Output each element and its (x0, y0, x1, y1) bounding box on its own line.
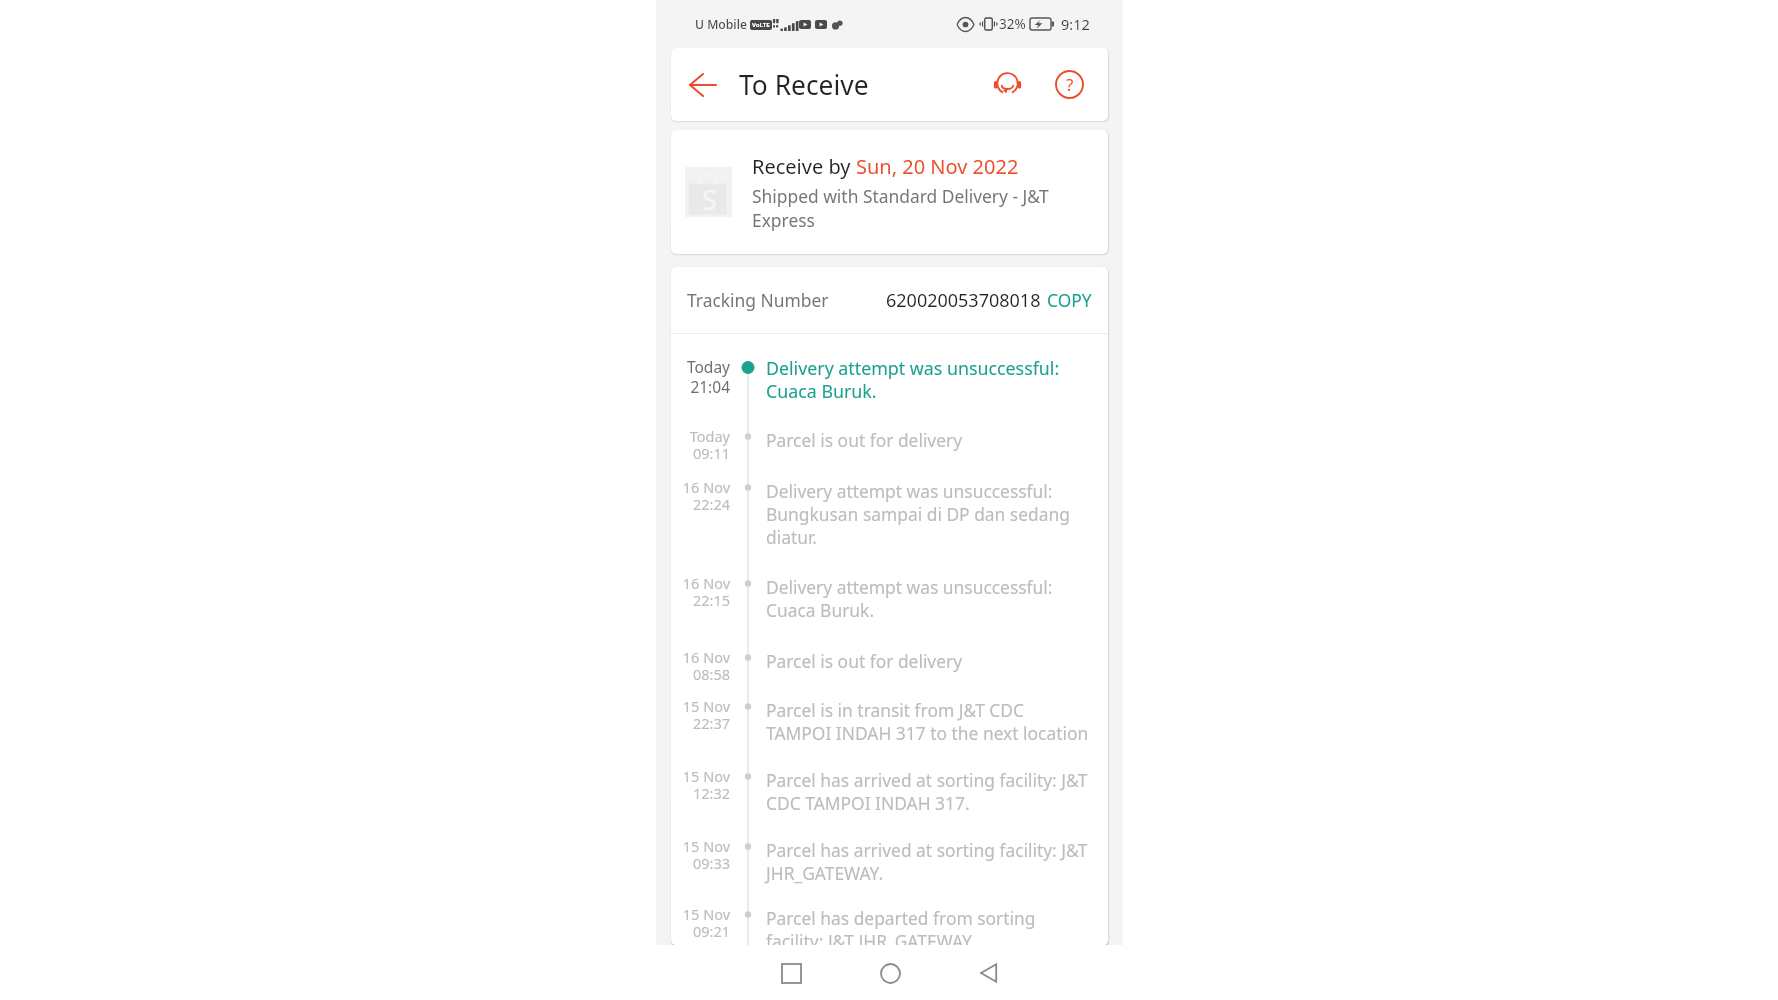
staticText: Parcel has arrived at sorting facility: … (766, 838, 1092, 885)
button[interactable]: S (671, 130, 1108, 254)
staticText: Parcel has arrived at sorting facility: … (766, 768, 1092, 815)
staticText: Tracking Number (687, 288, 829, 312)
staticText: Sun, 20 Nov 2022 (856, 153, 1019, 180)
staticText: 15 Nov 12:32 (675, 766, 730, 803)
staticText: 15 Nov 09:33 (675, 836, 730, 873)
staticText: 9:12 (1061, 14, 1090, 34)
button[interactable]: COPY (1047, 282, 1092, 318)
button[interactable]: Recents (767, 949, 815, 997)
staticText: Shipped with Standard Delivery - J&T Exp… (752, 184, 1094, 232)
button[interactable]: 15 Nov 09:33 (671, 831, 1108, 899)
staticText: S (702, 181, 717, 217)
staticText: Delivery attempt was unsuccessful: Bungk… (766, 479, 1092, 549)
staticText: COPY (1047, 288, 1092, 312)
staticText: Parcel has departed from sorting facilit… (766, 906, 1092, 945)
staticText: Parcel is out for delivery (766, 649, 963, 673)
button[interactable]: Back (671, 48, 734, 121)
staticText: 16 Nov 08:58 (675, 647, 730, 684)
button[interactable]: Home (866, 949, 914, 997)
button[interactable]: 15 Nov 12:32 (671, 761, 1108, 831)
staticText: ? (1066, 73, 1074, 96)
staticText: 16 Nov 22:15 (675, 573, 730, 610)
button[interactable]: Today 09:11 (671, 421, 1108, 472)
staticText: Delivery attempt was unsuccessful: Cuaca… (766, 575, 1092, 622)
staticText: 15 Nov 09:21 (675, 904, 730, 941)
button[interactable]: Customer support (984, 48, 1030, 121)
button[interactable]: Today 21:04 (671, 356, 1108, 421)
staticText: Receive by (752, 153, 856, 180)
staticText: To Receive (739, 67, 869, 103)
staticText: Parcel is out for delivery (766, 428, 963, 452)
staticText: Today 21:04 (675, 356, 730, 398)
staticText: Parcel is in transit from J&T CDC TAMPOI… (766, 698, 1092, 745)
staticText: Delivery attempt was unsuccessful: Cuaca… (766, 356, 1092, 403)
staticText: VoLTE (752, 21, 770, 29)
staticText: 32% (999, 15, 1026, 33)
button[interactable]: 16 Nov 08:58 (671, 642, 1108, 691)
button[interactable]: 16 Nov 22:24 (671, 472, 1108, 568)
staticText: U Mobile (695, 16, 747, 33)
button[interactable]: Help (1046, 48, 1092, 121)
button[interactable]: Back (965, 949, 1013, 997)
staticText: 16 Nov 22:24 (675, 477, 730, 514)
button[interactable]: 16 Nov 22:15 (671, 568, 1108, 642)
staticText: 15 Nov 22:37 (675, 696, 730, 733)
staticText: 620020053708018 (886, 288, 1041, 313)
button[interactable]: 15 Nov 22:37 (671, 691, 1108, 761)
button[interactable]: 15 Nov 09:21 (671, 899, 1108, 945)
staticText: Today 09:11 (675, 426, 730, 463)
